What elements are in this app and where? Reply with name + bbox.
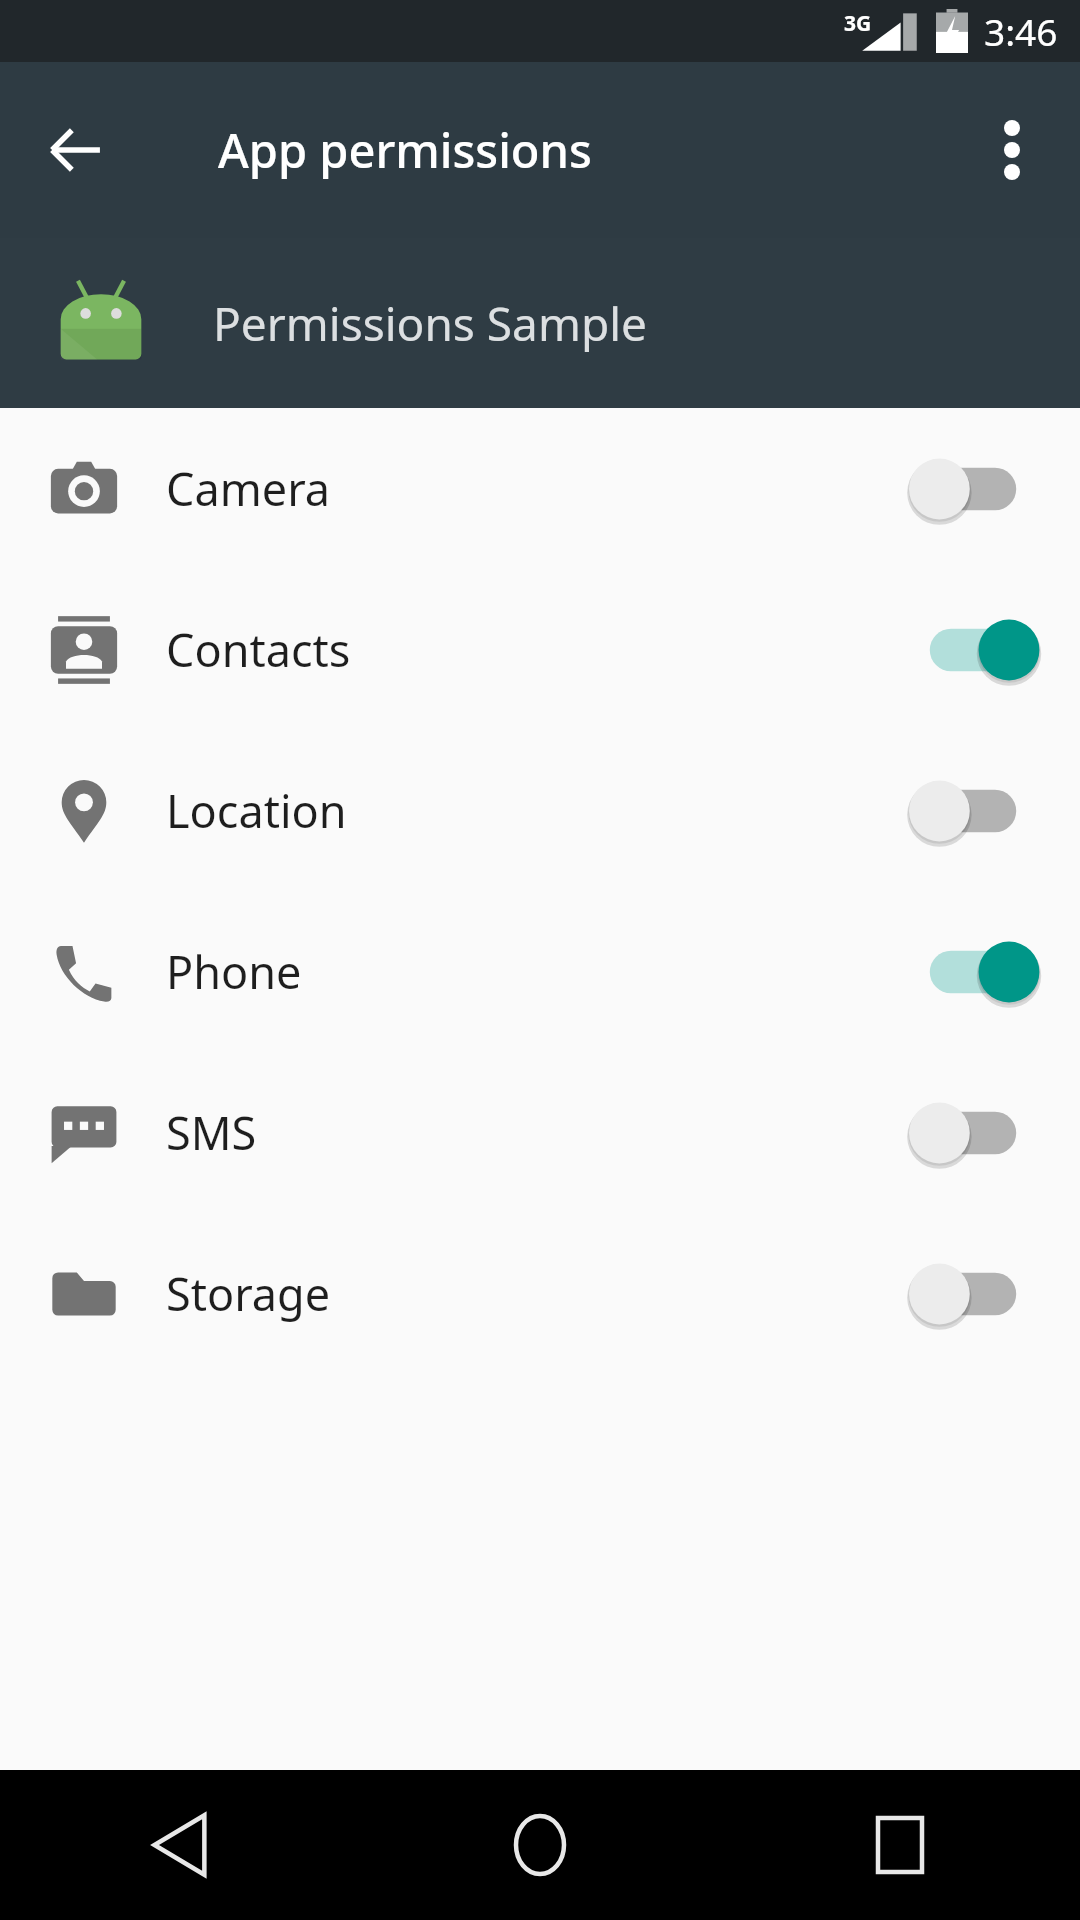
button[interactable]: Contacts permission toggle — [898, 590, 1048, 710]
button[interactable]: Contacts — [0, 569, 1080, 730]
button[interactable]: Phone — [0, 891, 1080, 1052]
staticText: Phone — [166, 941, 898, 1002]
button[interactable]: Storage — [0, 1213, 1080, 1374]
button[interactable]: SMS — [0, 1052, 1080, 1213]
button[interactable]: Location — [0, 730, 1080, 891]
staticText: Permissions Sample — [213, 292, 648, 355]
button[interactable]: Location permission toggle — [898, 751, 1048, 871]
button[interactable]: SMS permission toggle — [898, 1073, 1048, 1193]
button[interactable]: Storage permission toggle — [898, 1234, 1048, 1354]
button[interactable]: Phone permission toggle — [898, 912, 1048, 1032]
staticText: 3G — [844, 9, 872, 38]
button[interactable]: Home — [360, 1770, 720, 1920]
button[interactable]: Back — [28, 102, 124, 198]
button[interactable]: Permissions Sample — [0, 238, 1080, 408]
staticText: App permissions — [218, 118, 592, 182]
button[interactable]: Camera — [0, 408, 1080, 569]
staticText: 3:46 — [984, 6, 1058, 56]
button[interactable]: Recent apps — [720, 1770, 1080, 1920]
staticText: Storage — [166, 1263, 898, 1324]
button[interactable]: Camera permission toggle — [898, 429, 1048, 549]
staticText: Location — [166, 780, 898, 841]
staticText: Contacts — [166, 619, 898, 680]
staticText: SMS — [166, 1102, 898, 1163]
staticText: Camera — [166, 458, 898, 519]
button[interactable]: Back — [0, 1770, 360, 1920]
button[interactable]: More options — [964, 102, 1060, 198]
